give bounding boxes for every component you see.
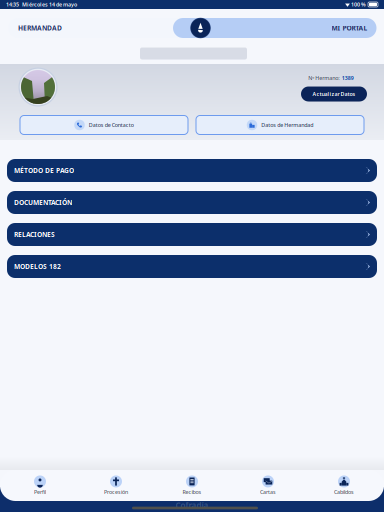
button[interactable]: Cartas <box>230 474 306 496</box>
button[interactable]: Cabildos <box>306 474 382 496</box>
staticText: RELACIONES <box>14 230 55 239</box>
staticText: Cartas <box>260 488 276 496</box>
button[interactable]: Procesión <box>78 474 154 496</box>
button[interactable]: Inicio <box>190 18 211 38</box>
button[interactable]: Datos de Contacto <box>20 115 188 134</box>
staticText: MÉTODO DE PAGO <box>14 166 74 175</box>
staticText: DOCUMENTACIÓN <box>14 198 72 207</box>
staticText: Miércoles 14 de mayo <box>19 1 77 8</box>
staticText: Datos de Hermandad <box>261 121 313 129</box>
staticText: MODELOS 182 <box>14 262 61 271</box>
staticText: 100 % <box>350 1 366 8</box>
staticText: Perfil <box>34 488 46 496</box>
button[interactable]: HERMANDAD <box>8 18 173 38</box>
staticText: Recibos <box>182 488 201 496</box>
staticText: HERMANDAD <box>18 24 62 32</box>
staticText: 1389 <box>342 74 354 82</box>
staticText: Procesión <box>104 488 128 496</box>
staticText: Nº Hermano: <box>308 74 339 82</box>
staticText: Actualizar Datos <box>312 90 355 98</box>
button[interactable]: MÉTODO DE PAGO <box>7 159 377 182</box>
button[interactable]: MODELOS 182 <box>7 255 377 278</box>
button[interactable]: MI PORTAL <box>173 18 376 38</box>
staticText: MI PORTAL <box>331 24 367 32</box>
button[interactable]: Perfil <box>2 474 78 496</box>
staticText: 14:35 <box>6 1 19 8</box>
button[interactable]: Recibos <box>154 474 230 496</box>
button[interactable]: Datos de Hermandad <box>196 115 364 134</box>
staticText: Cabildos <box>334 488 354 496</box>
button[interactable]: DOCUMENTACIÓN <box>7 191 377 214</box>
staticText: Datos de Contacto <box>89 121 134 129</box>
staticText: Cofradía <box>175 500 208 511</box>
button[interactable]: RELACIONES <box>7 223 377 246</box>
button[interactable]: Actualizar Datos <box>301 86 367 101</box>
